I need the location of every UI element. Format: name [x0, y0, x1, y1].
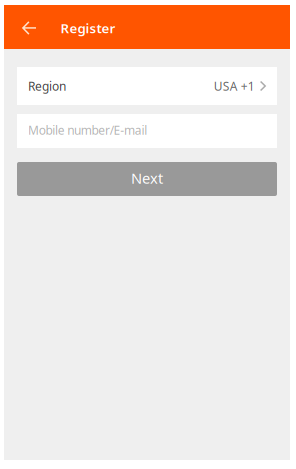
button[interactable]: Next [17, 162, 277, 196]
staticText: Mobile number/E-mail [28, 122, 147, 138]
staticText: USA +1 [214, 78, 255, 94]
staticText: Region [28, 78, 66, 94]
button[interactable]: Mobile number/E-mail [17, 114, 277, 148]
staticText: Next [131, 168, 163, 188]
staticText: Register [61, 19, 116, 37]
button[interactable]: Back [4, 5, 61, 49]
button[interactable]: Region [17, 67, 277, 105]
